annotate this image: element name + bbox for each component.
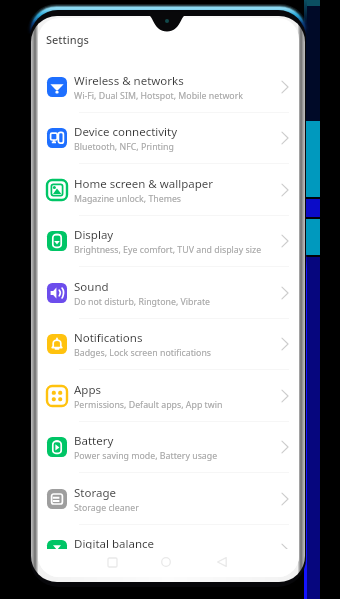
- staticText: Wireless & networks: [74, 73, 184, 89]
- staticText: Magazine unlock, Themes: [74, 193, 182, 205]
- staticText: Wi-Fi, Dual SIM, Hotspot, Mobile network: [74, 90, 243, 102]
- staticText: Settings: [46, 32, 89, 47]
- staticText: Display: [74, 227, 114, 243]
- staticText: Digital balance: [74, 536, 155, 552]
- staticText: Power saving mode, Battery usage: [74, 450, 218, 462]
- staticText: Device connectivity: [74, 124, 178, 140]
- staticText: Sound: [74, 279, 109, 295]
- staticText: Home screen & wallpaper: [74, 176, 213, 192]
- button[interactable]: Home screen & wallpaper: [38, 164, 299, 216]
- button[interactable]: Sound: [38, 267, 299, 319]
- button[interactable]: Device connectivity: [38, 112, 299, 164]
- button[interactable]: Battery: [38, 421, 299, 473]
- staticText: Storage cleaner: [74, 502, 139, 514]
- button[interactable]: Apps: [38, 370, 299, 422]
- staticText: Bluetooth, NFC, Printing: [74, 141, 174, 153]
- staticText: Screen time management: [74, 553, 181, 565]
- button[interactable]: Digital balance: [38, 524, 299, 576]
- button[interactable]: Storage: [38, 473, 299, 525]
- button[interactable]: Recent apps: [99, 549, 125, 575]
- button[interactable]: Wireless & networks: [38, 61, 299, 113]
- staticText: Permissions, Default apps, App twin: [74, 399, 223, 411]
- staticText: Apps: [74, 382, 102, 398]
- staticText: Brightness, Eye comfort, TUV and display…: [74, 244, 262, 256]
- staticText: Notifications: [74, 330, 143, 346]
- staticText: Storage: [74, 485, 116, 501]
- button[interactable]: Display: [38, 215, 299, 267]
- button[interactable]: Back: [209, 549, 235, 575]
- button[interactable]: Notifications: [38, 318, 299, 370]
- staticText: Do not disturb, Ringtone, Vibrate: [74, 296, 211, 308]
- staticText: Badges, Lock screen notifications: [74, 347, 212, 359]
- button[interactable]: Home: [153, 549, 179, 575]
- staticText: Battery: [74, 433, 114, 449]
